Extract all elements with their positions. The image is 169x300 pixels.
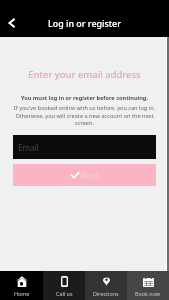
button[interactable]: Book now: [127, 271, 169, 300]
staticText: Email: [18, 142, 39, 153]
button[interactable]: Back: [0, 0, 22, 37]
staticText: Book now: [135, 290, 161, 297]
staticText: Log in or register: [48, 17, 121, 29]
staticText: Next: [81, 170, 99, 181]
button[interactable]: Call us: [43, 271, 85, 300]
staticText: Directions: [93, 290, 119, 297]
staticText: You must log in or register before conti…: [13, 94, 156, 102]
button[interactable]: Directions: [85, 271, 127, 300]
staticText: Home: [14, 290, 30, 297]
staticText: If you've booked online with us before, …: [13, 104, 156, 127]
staticText: Call us: [56, 290, 73, 297]
staticText: Enter your email address: [13, 68, 156, 81]
button[interactable]: Email: [13, 135, 156, 159]
button[interactable]: Home: [0, 271, 43, 300]
button[interactable]: Next: [13, 164, 156, 186]
